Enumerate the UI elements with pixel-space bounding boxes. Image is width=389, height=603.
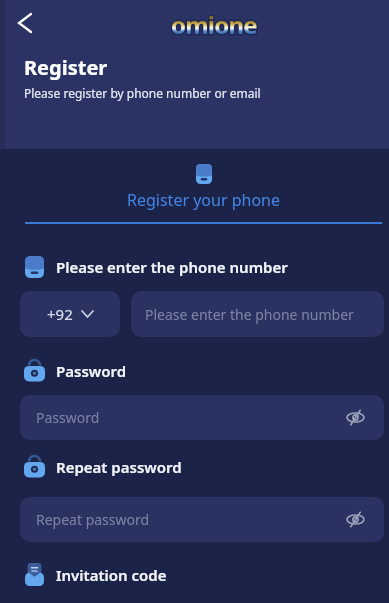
staticText: omione: [171, 8, 257, 41]
button[interactable]: +92: [20, 291, 120, 337]
button[interactable]: [338, 497, 372, 542]
staticText: Repeat password: [36, 510, 150, 529]
button[interactable]: [8, 6, 42, 40]
staticText: Repeat password: [56, 457, 182, 477]
button[interactable]: Repeat password: [20, 497, 384, 542]
staticText: Register: [24, 54, 108, 81]
staticText: omione: [171, 8, 257, 41]
staticText: Please register by phone number or email: [24, 85, 261, 101]
staticText: Password: [36, 408, 100, 427]
staticText: Register your phone: [127, 189, 280, 211]
staticText: Please enter the phone number: [145, 305, 354, 324]
button[interactable]: [338, 395, 372, 440]
staticText: Please enter the phone number: [56, 257, 288, 277]
staticText: +92: [47, 304, 73, 324]
staticText: Password: [56, 361, 127, 381]
button[interactable]: Please enter the phone number: [131, 291, 384, 337]
staticText: Invitation code: [56, 565, 167, 585]
button[interactable]: Register your phone: [25, 149, 382, 224]
button[interactable]: Password: [20, 395, 384, 440]
